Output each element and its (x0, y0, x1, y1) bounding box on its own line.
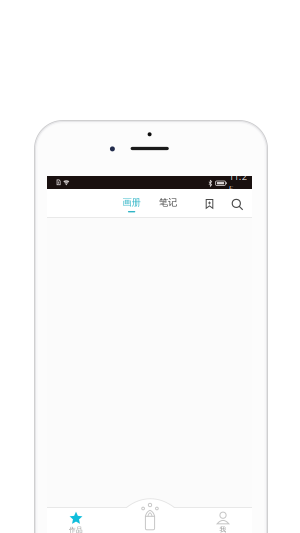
button[interactable]: Create (130, 503, 170, 530)
button[interactable]: 作品 (52, 509, 100, 533)
button[interactable]: 画册 (112, 189, 152, 217)
button[interactable]: Search (226, 195, 248, 215)
button[interactable]: Bookmarks (198, 194, 220, 214)
staticText: 我 (219, 525, 226, 533)
staticText: 笔记 (159, 197, 177, 208)
button[interactable]: 我 (199, 509, 247, 533)
staticText: 11:25 (229, 170, 247, 195)
button[interactable]: 笔记 (148, 189, 188, 217)
staticText: 作品 (69, 526, 83, 533)
staticText: 画册 (123, 197, 141, 208)
